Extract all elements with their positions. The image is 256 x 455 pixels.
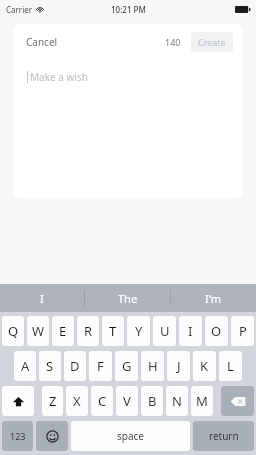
button[interactable]: L: [219, 351, 242, 381]
button[interactable]: T: [102, 316, 124, 346]
button[interactable]: J: [167, 351, 190, 381]
button[interactable]: 123: [2, 421, 33, 451]
staticText: S: [46, 357, 54, 375]
button[interactable]: O: [205, 316, 228, 346]
button[interactable]: Z: [42, 386, 63, 416]
staticText: B: [148, 392, 157, 410]
button[interactable]: F: [89, 351, 112, 381]
button[interactable]: H: [141, 351, 164, 381]
staticText: return: [209, 429, 239, 443]
staticText: X: [73, 392, 81, 410]
button[interactable]: C: [91, 386, 113, 416]
button[interactable]: Emoji: [36, 421, 68, 451]
button[interactable]: I'm: [171, 284, 256, 312]
button[interactable]: Q: [2, 316, 24, 346]
button[interactable]: I: [0, 284, 84, 312]
button[interactable]: R: [77, 316, 99, 346]
button[interactable]: X: [66, 386, 88, 416]
button[interactable]: S: [39, 351, 61, 381]
staticText: U: [160, 322, 170, 340]
staticText: I'm: [205, 291, 222, 306]
staticText: F: [97, 357, 104, 375]
staticText: 123: [10, 430, 26, 442]
staticText: T: [109, 322, 117, 340]
staticText: 10:21 PM: [111, 4, 146, 15]
staticText: J: [177, 357, 181, 375]
staticText: I: [40, 291, 44, 306]
staticText: Create: [198, 36, 226, 48]
button[interactable]: Y: [127, 316, 150, 346]
staticText: M: [196, 392, 208, 410]
button[interactable]: A: [14, 351, 36, 381]
button[interactable]: return: [193, 421, 254, 451]
button[interactable]: space: [71, 421, 190, 451]
staticText: space: [117, 429, 144, 443]
button[interactable]: Create: [191, 32, 233, 52]
button[interactable]: G: [115, 351, 138, 381]
staticText: Q: [8, 322, 19, 340]
staticText: K: [200, 357, 209, 375]
staticText: V: [123, 392, 131, 410]
staticText: Make a wish: [30, 70, 88, 84]
button[interactable]: D: [64, 351, 86, 381]
button[interactable]: Cancel: [23, 32, 61, 52]
button[interactable]: B: [141, 386, 163, 416]
button[interactable]: N: [166, 386, 188, 416]
staticText: P: [239, 322, 247, 340]
staticText: Carrier: [6, 4, 33, 15]
staticText: O: [211, 322, 222, 340]
staticText: Z: [49, 392, 57, 410]
staticText: I: [188, 322, 193, 340]
staticText: Cancel: [26, 35, 58, 49]
button[interactable]: K: [193, 351, 216, 381]
staticText: G: [122, 357, 132, 375]
button[interactable]: E: [52, 316, 74, 346]
button[interactable]: Shift: [2, 386, 34, 416]
staticText: 140: [165, 36, 181, 48]
staticText: N: [172, 392, 182, 410]
button[interactable]: M: [191, 386, 213, 416]
button[interactable]: The: [85, 284, 170, 312]
button[interactable]: U: [153, 316, 176, 346]
staticText: Y: [135, 322, 143, 340]
button[interactable]: Backspace: [221, 386, 254, 416]
button[interactable]: V: [116, 386, 138, 416]
staticText: W: [32, 322, 45, 340]
staticText: L: [227, 357, 234, 375]
staticText: C: [98, 392, 107, 410]
button[interactable]: I: [179, 316, 202, 346]
button[interactable]: P: [231, 316, 254, 346]
staticText: A: [21, 357, 30, 375]
staticText: E: [59, 322, 67, 340]
staticText: The: [118, 291, 138, 306]
staticText: D: [70, 357, 80, 375]
staticText: H: [148, 357, 158, 375]
staticText: R: [84, 322, 93, 340]
button[interactable]: W: [27, 316, 49, 346]
